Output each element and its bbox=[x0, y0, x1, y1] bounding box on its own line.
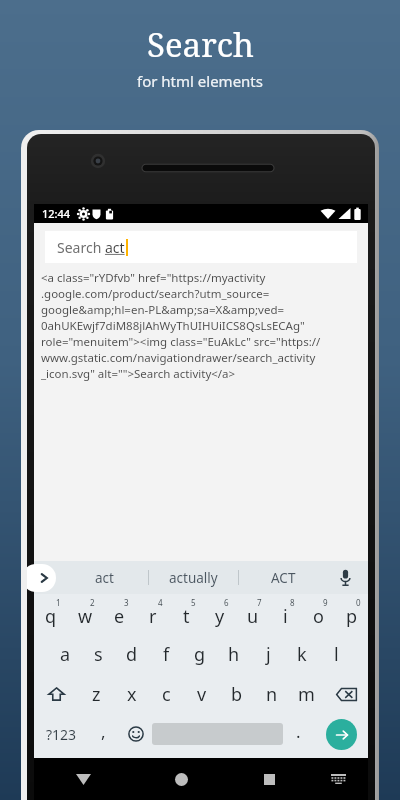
staticText: role="menuitem"><img class="EuAkLc" src=… bbox=[41, 334, 321, 350]
button[interactable]: actually bbox=[149, 561, 238, 594]
staticText: <a class="rYDfvb" href="https://myactivi… bbox=[41, 270, 266, 286]
button[interactable]: l bbox=[319, 634, 353, 674]
staticText: o bbox=[313, 604, 324, 629]
staticText: g bbox=[194, 642, 206, 667]
staticText: Search act bbox=[57, 238, 125, 257]
staticText: 9 bbox=[323, 597, 328, 608]
staticText: t bbox=[183, 604, 190, 629]
button[interactable]: g bbox=[183, 634, 217, 674]
staticText: w bbox=[78, 604, 93, 629]
button[interactable]: act bbox=[60, 561, 148, 594]
staticText: 7 bbox=[257, 597, 262, 608]
button[interactable]: s bbox=[82, 634, 115, 674]
button[interactable]: Shift bbox=[34, 674, 79, 714]
staticText: u bbox=[247, 604, 259, 629]
staticText: i bbox=[283, 604, 288, 629]
button[interactable]: a bbox=[49, 634, 82, 674]
staticText: a bbox=[60, 642, 71, 667]
staticText: Search bbox=[147, 22, 254, 67]
button[interactable]: 9 bbox=[302, 594, 335, 634]
button[interactable]: . bbox=[283, 714, 314, 754]
button[interactable]: Backspace bbox=[324, 674, 368, 714]
staticText: 8 bbox=[290, 597, 295, 608]
button[interactable]: k bbox=[285, 634, 319, 674]
button[interactable]: , bbox=[88, 714, 119, 754]
staticText: y bbox=[215, 604, 225, 629]
staticText: x bbox=[127, 682, 137, 707]
button[interactable]: m bbox=[289, 674, 324, 714]
staticText: h bbox=[228, 642, 240, 667]
staticText: q bbox=[45, 604, 57, 629]
staticText: google&amp;hl=en-PL&amp;sa=X&amp;ved= bbox=[41, 302, 285, 318]
button[interactable]: ACT bbox=[239, 561, 328, 594]
button[interactable]: x bbox=[114, 674, 149, 714]
button[interactable]: Recent apps bbox=[230, 758, 309, 800]
staticText: act bbox=[95, 569, 114, 587]
staticText: k bbox=[297, 642, 307, 667]
staticText: e bbox=[114, 604, 125, 629]
button[interactable]: c bbox=[149, 674, 184, 714]
button[interactable]: j bbox=[251, 634, 285, 674]
staticText: 4 bbox=[158, 597, 163, 608]
button[interactable]: Home bbox=[132, 758, 230, 800]
staticText: , bbox=[101, 720, 106, 743]
staticText: l bbox=[334, 642, 339, 667]
staticText: f bbox=[163, 642, 170, 667]
button[interactable]: 7 bbox=[236, 594, 269, 634]
staticText: 1 bbox=[56, 597, 61, 608]
button[interactable]: h bbox=[217, 634, 251, 674]
button[interactable]: 1 bbox=[34, 594, 68, 634]
staticText: _icon.svg" alt="">Search activity</a> bbox=[41, 366, 236, 382]
staticText: m bbox=[298, 682, 315, 707]
staticText: 6 bbox=[224, 597, 229, 608]
staticText: . bbox=[296, 720, 301, 743]
button[interactable]: b bbox=[219, 674, 254, 714]
button[interactable]: Hide keyboard bbox=[34, 758, 132, 800]
button[interactable]: 8 bbox=[269, 594, 302, 634]
button[interactable]: f bbox=[149, 634, 183, 674]
button[interactable]: 4 bbox=[136, 594, 170, 634]
button[interactable]: 0 bbox=[335, 594, 368, 634]
staticText: for html elements bbox=[137, 71, 263, 91]
staticText: .google.com/product/search?utm_source= bbox=[41, 286, 270, 302]
staticText: 3 bbox=[124, 597, 129, 608]
button[interactable]: Search bbox=[326, 719, 357, 750]
staticText: v bbox=[197, 682, 207, 707]
staticText: s bbox=[94, 642, 103, 667]
button[interactable]: Switch keyboard bbox=[309, 758, 368, 800]
staticText: p bbox=[346, 604, 358, 629]
button[interactable]: Voice input bbox=[328, 561, 362, 594]
staticText: ACT bbox=[271, 569, 296, 587]
button[interactable]: 2 bbox=[68, 594, 102, 634]
staticText: actually bbox=[169, 569, 218, 587]
button[interactable]: Emoji bbox=[119, 714, 152, 754]
button[interactable]: Search act bbox=[45, 231, 357, 263]
staticText: www.gstatic.com/navigationdrawer/search_… bbox=[41, 350, 316, 366]
staticText: 5 bbox=[191, 597, 196, 608]
staticText: 12:44 bbox=[42, 206, 71, 221]
staticText: n bbox=[266, 682, 278, 707]
staticText: d bbox=[126, 642, 138, 667]
staticText: 2 bbox=[90, 597, 95, 608]
button[interactable]: 5 bbox=[170, 594, 203, 634]
button[interactable]: 6 bbox=[203, 594, 236, 634]
button[interactable]: More suggestions bbox=[27, 564, 56, 592]
button[interactable]: ?123 bbox=[34, 714, 88, 754]
button[interactable]: v bbox=[184, 674, 219, 714]
staticText: 0 bbox=[356, 597, 361, 608]
staticText: r bbox=[149, 604, 157, 629]
staticText: b bbox=[231, 682, 243, 707]
button[interactable]: z bbox=[79, 674, 114, 714]
button[interactable]: n bbox=[254, 674, 289, 714]
staticText: c bbox=[162, 682, 171, 707]
button[interactable]: 3 bbox=[102, 594, 136, 634]
staticText: ?123 bbox=[46, 725, 77, 744]
button[interactable]: d bbox=[115, 634, 149, 674]
staticText: j bbox=[266, 642, 271, 667]
staticText: 0ahUKEwjf7diM88jlAhWyThUIHUiICS8QsLsECAg… bbox=[41, 318, 305, 334]
staticText: z bbox=[92, 682, 101, 707]
